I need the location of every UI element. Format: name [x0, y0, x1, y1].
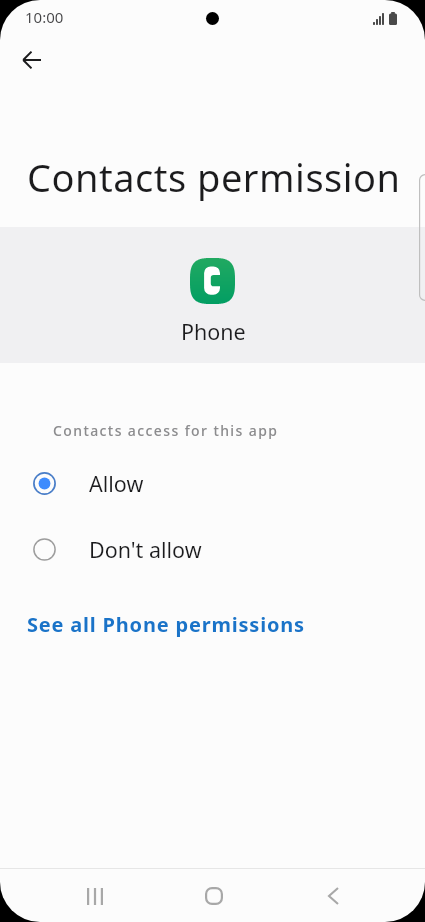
button[interactable]: Navigate up — [9, 38, 53, 82]
staticText: Contacts access for this app — [53, 421, 279, 440]
button[interactable]: See all Phone permissions — [0, 596, 425, 646]
button[interactable]: Back — [307, 870, 359, 922]
button[interactable]: Home — [188, 870, 240, 922]
staticText: Contacts permission — [27, 151, 401, 203]
staticText: Don't allow — [89, 535, 202, 564]
staticText: 10:00 — [25, 7, 64, 27]
button[interactable]: Recent apps — [69, 870, 121, 922]
staticText: See all Phone permissions — [27, 611, 305, 638]
button[interactable]: Allow — [0, 455, 425, 511]
button[interactable]: Don't allow — [0, 521, 425, 577]
staticText: Allow — [89, 469, 144, 498]
staticText: Phone — [181, 317, 246, 346]
